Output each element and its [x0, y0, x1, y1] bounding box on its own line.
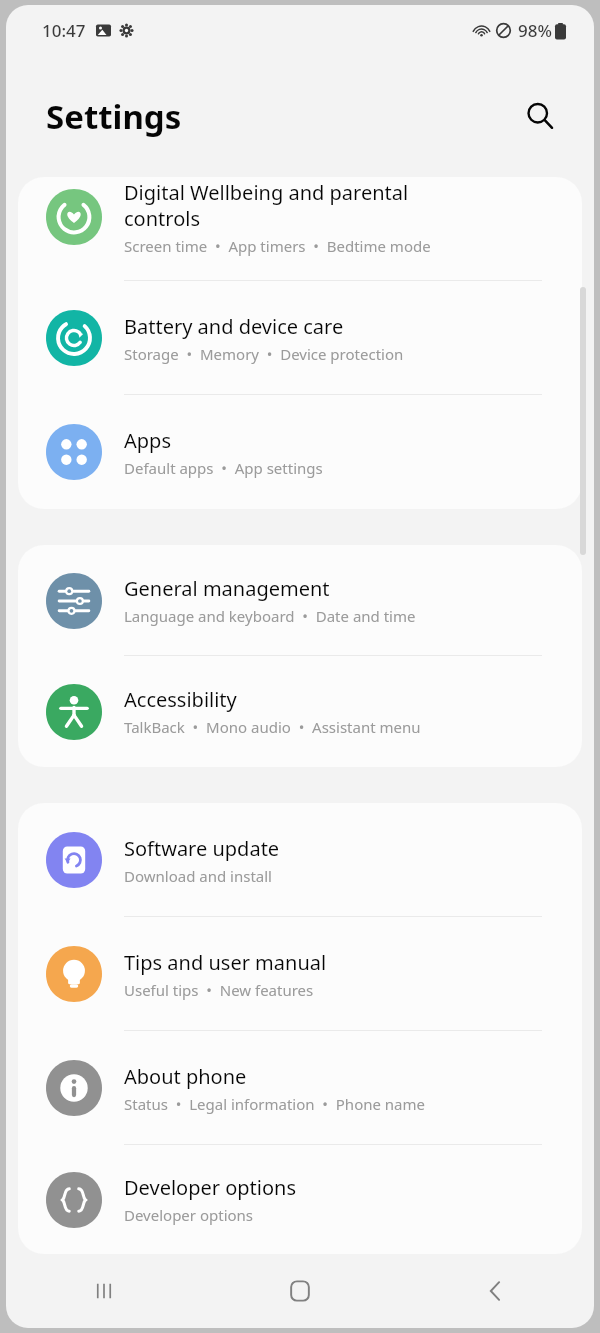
staticText: Screen time • App timers • Bedtime mode — [124, 236, 431, 256]
staticText: Download and install — [124, 866, 272, 886]
button[interactable]: Tips and user manual — [18, 917, 582, 1031]
staticText: Status • Legal information • Phone name — [124, 1094, 426, 1114]
button[interactable]: Home — [202, 1254, 398, 1328]
button[interactable]: General management — [18, 545, 582, 656]
staticText: Useful tips • New features — [124, 980, 314, 1000]
staticText: TalkBack • Mono audio • Assistant menu — [124, 717, 421, 737]
button[interactable]: Apps — [18, 395, 582, 509]
staticText: Developer options — [124, 1205, 254, 1225]
button[interactable]: Accessibility — [18, 656, 582, 767]
button[interactable]: Software update — [18, 803, 582, 917]
button[interactable]: Back — [398, 1254, 594, 1328]
staticText: Digital Wellbeing and parental controls — [124, 179, 409, 232]
staticText: 10:47 — [42, 19, 86, 42]
staticText: Software update — [124, 835, 280, 862]
button[interactable]: Developer options — [18, 1145, 582, 1254]
staticText: Apps — [124, 427, 171, 454]
staticText: General management — [124, 575, 330, 602]
staticText: Battery and device care — [124, 313, 344, 340]
button[interactable]: About phone — [18, 1031, 582, 1145]
staticText: About phone — [124, 1063, 247, 1090]
staticText: Storage • Memory • Device protection — [124, 344, 404, 364]
staticText: Developer options — [124, 1174, 297, 1201]
staticText: 98% — [518, 19, 552, 42]
staticText: Language and keyboard • Date and time — [124, 606, 416, 626]
button[interactable]: Battery and device care — [18, 281, 582, 395]
button[interactable]: Recents — [6, 1254, 202, 1328]
staticText: Settings — [46, 94, 182, 139]
button[interactable]: Digital Wellbeing and parental controls — [18, 177, 582, 281]
staticText: Default apps • App settings — [124, 458, 323, 478]
staticText: Tips and user manual — [124, 949, 327, 976]
button[interactable]: Search — [518, 94, 562, 138]
staticText: Accessibility — [124, 686, 237, 713]
